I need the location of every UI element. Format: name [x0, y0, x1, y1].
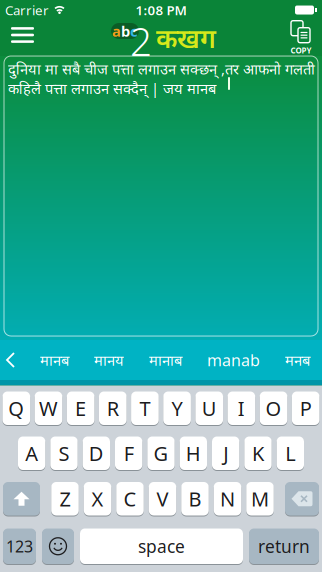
- button[interactable]: R: [99, 391, 126, 425]
- button[interactable]: Z: [51, 482, 79, 515]
- staticText: G: [153, 440, 168, 467]
- staticText: मानाब: [149, 350, 182, 370]
- button[interactable]: Menu: [0, 23, 34, 53]
- staticText: V: [156, 485, 168, 512]
- button[interactable]: मानब: [40, 350, 69, 370]
- button[interactable]: E: [67, 391, 94, 425]
- staticText: T: [139, 395, 150, 422]
- button[interactable]: X: [84, 482, 111, 515]
- button[interactable]: मानय: [94, 350, 124, 370]
- button[interactable]: K: [244, 436, 272, 470]
- button[interactable]: W: [35, 391, 62, 425]
- button[interactable]: Copy: [289, 20, 322, 56]
- button[interactable]: space: [80, 528, 243, 564]
- button[interactable]: J: [212, 436, 239, 470]
- staticText: मानब: [40, 350, 69, 370]
- staticText: Z: [59, 485, 70, 512]
- staticText: b: [121, 21, 130, 41]
- staticText: return: [258, 535, 310, 558]
- staticText: a: [112, 21, 121, 41]
- staticText: J: [223, 440, 228, 467]
- staticText: मनब: [285, 350, 310, 370]
- button[interactable]: N: [214, 482, 241, 515]
- staticText: A: [25, 440, 38, 467]
- staticText: दुनिया मा सबै चीज पत्ता लगाउन सक्छन् ,तर…: [8, 59, 315, 98]
- button[interactable]: Shift: [3, 482, 40, 515]
- staticText: manab: [207, 349, 260, 371]
- staticText: मानय: [94, 350, 124, 370]
- staticText: R: [107, 395, 119, 422]
- staticText: K: [252, 440, 264, 467]
- button[interactable]: H: [180, 436, 207, 470]
- button[interactable]: L: [277, 436, 304, 470]
- button[interactable]: मनब: [285, 350, 322, 370]
- staticText: H: [186, 440, 201, 467]
- staticText: U: [202, 395, 217, 422]
- button[interactable]: A: [18, 436, 45, 470]
- button[interactable]: Return: [249, 528, 319, 564]
- staticText: P: [300, 395, 312, 422]
- button[interactable]: F: [115, 436, 142, 470]
- staticText: D: [89, 440, 104, 467]
- button[interactable]: C: [116, 482, 144, 515]
- button[interactable]: D: [83, 436, 110, 470]
- staticText: S: [58, 440, 69, 467]
- button[interactable]: G: [147, 436, 175, 470]
- staticText: M: [251, 485, 269, 512]
- staticText: कखग: [156, 20, 216, 56]
- button[interactable]: T: [131, 391, 159, 425]
- staticText: Carrier: [5, 1, 49, 19]
- staticText: 2: [130, 15, 152, 67]
- staticText: space: [138, 535, 185, 558]
- button[interactable]: Previous suggestions: [0, 352, 15, 368]
- staticText: c: [130, 21, 138, 41]
- staticText: COPY: [290, 45, 311, 56]
- button[interactable]: U: [195, 391, 223, 425]
- staticText: C: [123, 485, 136, 512]
- staticText: W: [39, 395, 58, 422]
- button[interactable]: V: [149, 482, 176, 515]
- staticText: O: [265, 395, 281, 422]
- staticText: Y: [172, 395, 183, 422]
- button[interactable]: मानाब: [149, 350, 182, 370]
- staticText: I: [238, 395, 245, 422]
- button[interactable]: P: [292, 391, 319, 425]
- button[interactable]: O: [260, 391, 287, 425]
- staticText: F: [124, 440, 134, 467]
- button[interactable]: M: [246, 482, 274, 515]
- button[interactable]: I: [227, 391, 255, 425]
- staticText: L: [285, 440, 295, 467]
- button[interactable]: Emoji: [42, 528, 74, 564]
- button[interactable]: B: [181, 482, 209, 515]
- button[interactable]: S: [50, 436, 78, 470]
- button[interactable]: Q: [2, 391, 30, 425]
- staticText: X: [91, 485, 103, 512]
- button[interactable]: Numbers: [3, 528, 36, 564]
- staticText: 123: [6, 536, 33, 557]
- button[interactable]: Y: [163, 391, 191, 425]
- staticText: 1:08 PM: [135, 1, 186, 19]
- staticText: B: [188, 485, 201, 512]
- button[interactable]: manab: [207, 349, 260, 371]
- button[interactable]: Delete: [285, 482, 319, 515]
- staticText: E: [75, 395, 86, 422]
- staticText: N: [220, 485, 235, 512]
- staticText: Q: [8, 395, 24, 422]
